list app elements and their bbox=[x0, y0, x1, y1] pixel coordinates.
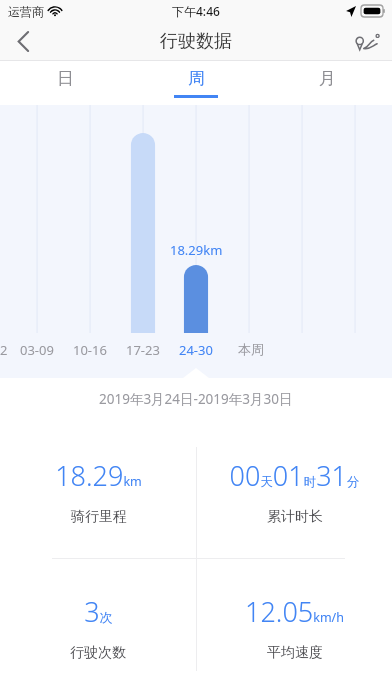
button[interactable]: 月 bbox=[261, 61, 392, 105]
staticText: 10-16 bbox=[73, 341, 107, 359]
button[interactable]: 12.05km/h bbox=[196, 558, 392, 696]
staticText: 00天01时31分 bbox=[229, 457, 360, 494]
staticText: 24-30 bbox=[179, 341, 213, 359]
staticText: 周 bbox=[188, 68, 205, 89]
button[interactable]: 周 bbox=[130, 61, 261, 105]
staticText: 2019年3月24日-2019年3月30日 bbox=[99, 390, 293, 408]
staticText: 月 bbox=[319, 68, 336, 89]
staticText: 累计时长 bbox=[267, 508, 323, 526]
button[interactable]: 18.29km bbox=[0, 424, 196, 558]
staticText: 下午4:46 bbox=[172, 3, 220, 19]
button[interactable]: 日 bbox=[0, 61, 130, 105]
staticText: 本周 bbox=[238, 341, 264, 357]
button[interactable]: 00天01时31分 bbox=[196, 424, 392, 558]
staticText: 18.29km bbox=[55, 457, 142, 494]
staticText: 骑行里程 bbox=[71, 508, 127, 526]
staticText: 03-09 bbox=[20, 341, 54, 359]
staticText: 3次 bbox=[84, 593, 113, 630]
button[interactable]: 3次 bbox=[0, 558, 196, 696]
button[interactable]: 查看轨迹 bbox=[344, 22, 392, 61]
staticText: 18.29km bbox=[170, 241, 223, 259]
staticText: 平均速度 bbox=[267, 644, 323, 662]
staticText: 17-23 bbox=[126, 341, 160, 359]
staticText: 日 bbox=[57, 68, 74, 89]
button[interactable]: 返回 bbox=[0, 22, 46, 61]
staticText: 12.05km/h bbox=[245, 593, 344, 630]
staticText: 运营商 bbox=[8, 4, 44, 19]
staticText: 行驶次数 bbox=[70, 644, 126, 662]
staticText: 行驶数据 bbox=[160, 30, 232, 53]
staticText: 2 bbox=[0, 341, 8, 359]
